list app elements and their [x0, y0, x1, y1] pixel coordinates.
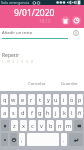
button[interactable]: g	[37, 107, 43, 118]
staticText: Solo emergencia	[1, 0, 30, 5]
button[interactable]: o	[69, 94, 75, 105]
staticText: x	[22, 122, 25, 129]
staticText: h	[46, 109, 50, 116]
staticText: 18:15	[39, 18, 51, 24]
staticText: i	[63, 96, 65, 103]
staticText: p	[78, 96, 82, 103]
staticText: j	[55, 109, 57, 116]
button[interactable]: v	[38, 120, 45, 131]
staticText: g	[38, 109, 42, 116]
button[interactable]: q	[1, 94, 8, 105]
staticText: t	[39, 96, 41, 103]
staticText: e	[21, 96, 25, 103]
button[interactable]: d	[19, 107, 26, 118]
button[interactable]: Delete	[61, 16, 70, 25]
staticText: a	[3, 109, 7, 116]
staticText: Guardar	[61, 80, 78, 86]
button[interactable]: r	[28, 94, 35, 105]
button[interactable]: t	[37, 94, 43, 105]
staticText: o	[70, 96, 74, 103]
staticText: ñ	[78, 109, 82, 116]
button[interactable]: j	[53, 107, 59, 118]
staticText: y	[47, 96, 50, 103]
button[interactable]: Cancelar	[27, 78, 47, 88]
button[interactable]: z	[11, 120, 18, 131]
staticText: Repetir	[2, 52, 19, 59]
button[interactable]: Enter	[69, 133, 83, 146]
staticText: 9/01/2020	[14, 7, 55, 19]
button[interactable]: Symbols	[1, 133, 8, 146]
staticText: ,	[21, 136, 23, 143]
button[interactable]: Emoji	[10, 133, 17, 146]
staticText: z	[13, 122, 16, 129]
staticText: v	[40, 122, 43, 129]
button[interactable]: h	[45, 107, 51, 118]
button[interactable]: Guardar	[60, 78, 79, 88]
button[interactable]: p	[77, 94, 83, 105]
button[interactable]: e	[19, 94, 26, 105]
button[interactable]: u	[53, 94, 59, 105]
staticText: f	[31, 109, 33, 116]
staticText: u	[54, 96, 58, 103]
staticText: w	[11, 96, 16, 103]
button[interactable]: a	[1, 107, 8, 118]
button[interactable]: w	[10, 94, 17, 105]
staticText: c	[31, 122, 34, 129]
button[interactable]: l	[69, 107, 75, 118]
staticText: L M X J V S D	[2, 60, 34, 64]
button[interactable]: n	[56, 120, 63, 131]
staticText: Cancelar	[28, 80, 46, 86]
button[interactable]: c	[29, 120, 36, 131]
button[interactable]: f	[28, 107, 35, 118]
staticText: s	[12, 109, 15, 116]
staticText: n	[58, 122, 62, 129]
staticText: l	[71, 109, 73, 116]
button[interactable]: b	[47, 120, 54, 131]
button[interactable]: Alarm	[72, 16, 81, 25]
button[interactable]: y	[45, 94, 51, 105]
staticText: .	[63, 136, 65, 143]
button[interactable]: .	[61, 133, 67, 146]
button[interactable]: s	[10, 107, 17, 118]
button[interactable]: m	[65, 120, 72, 131]
button[interactable]: Theme	[72, 29, 80, 37]
staticText: q	[3, 96, 7, 103]
staticText: b	[49, 122, 53, 129]
button[interactable]: Shift	[1, 120, 9, 131]
button[interactable]: ,	[19, 133, 25, 146]
staticText: k	[63, 109, 66, 116]
button[interactable]: x	[20, 120, 27, 131]
staticText: Añadir un texto	[2, 30, 33, 36]
button[interactable]: ñ	[77, 107, 83, 118]
staticText: m	[66, 122, 72, 129]
button[interactable]: k	[61, 107, 67, 118]
button[interactable]: i	[61, 94, 67, 105]
staticText: r	[30, 96, 33, 103]
button[interactable]: Backspace	[74, 120, 83, 131]
staticText: d	[21, 109, 25, 116]
